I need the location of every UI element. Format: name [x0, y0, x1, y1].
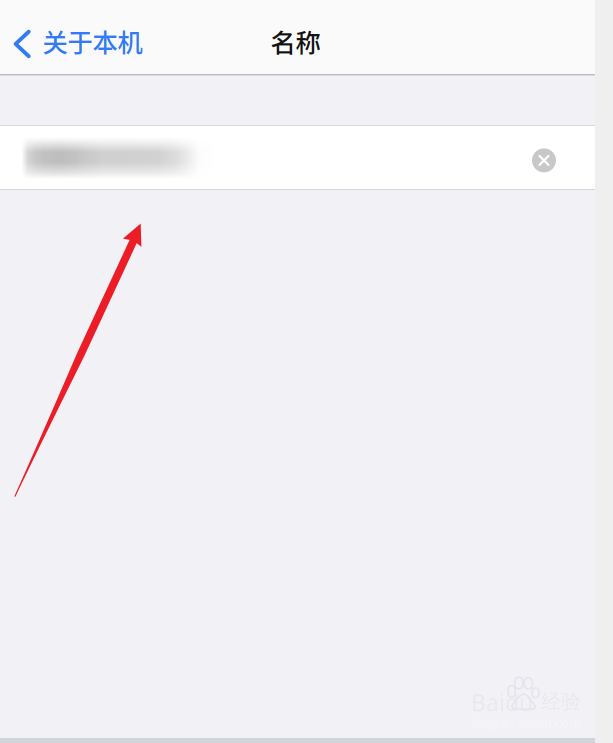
staticText: 经验	[541, 689, 581, 714]
button[interactable]: 关于本机	[8, 13, 150, 71]
staticText: Baidu	[471, 687, 533, 718]
button[interactable]: Clear text	[522, 138, 566, 182]
staticText: 关于本机	[42, 23, 142, 59]
button[interactable]: Device name	[0, 126, 595, 189]
staticText: 名称	[270, 23, 320, 60]
